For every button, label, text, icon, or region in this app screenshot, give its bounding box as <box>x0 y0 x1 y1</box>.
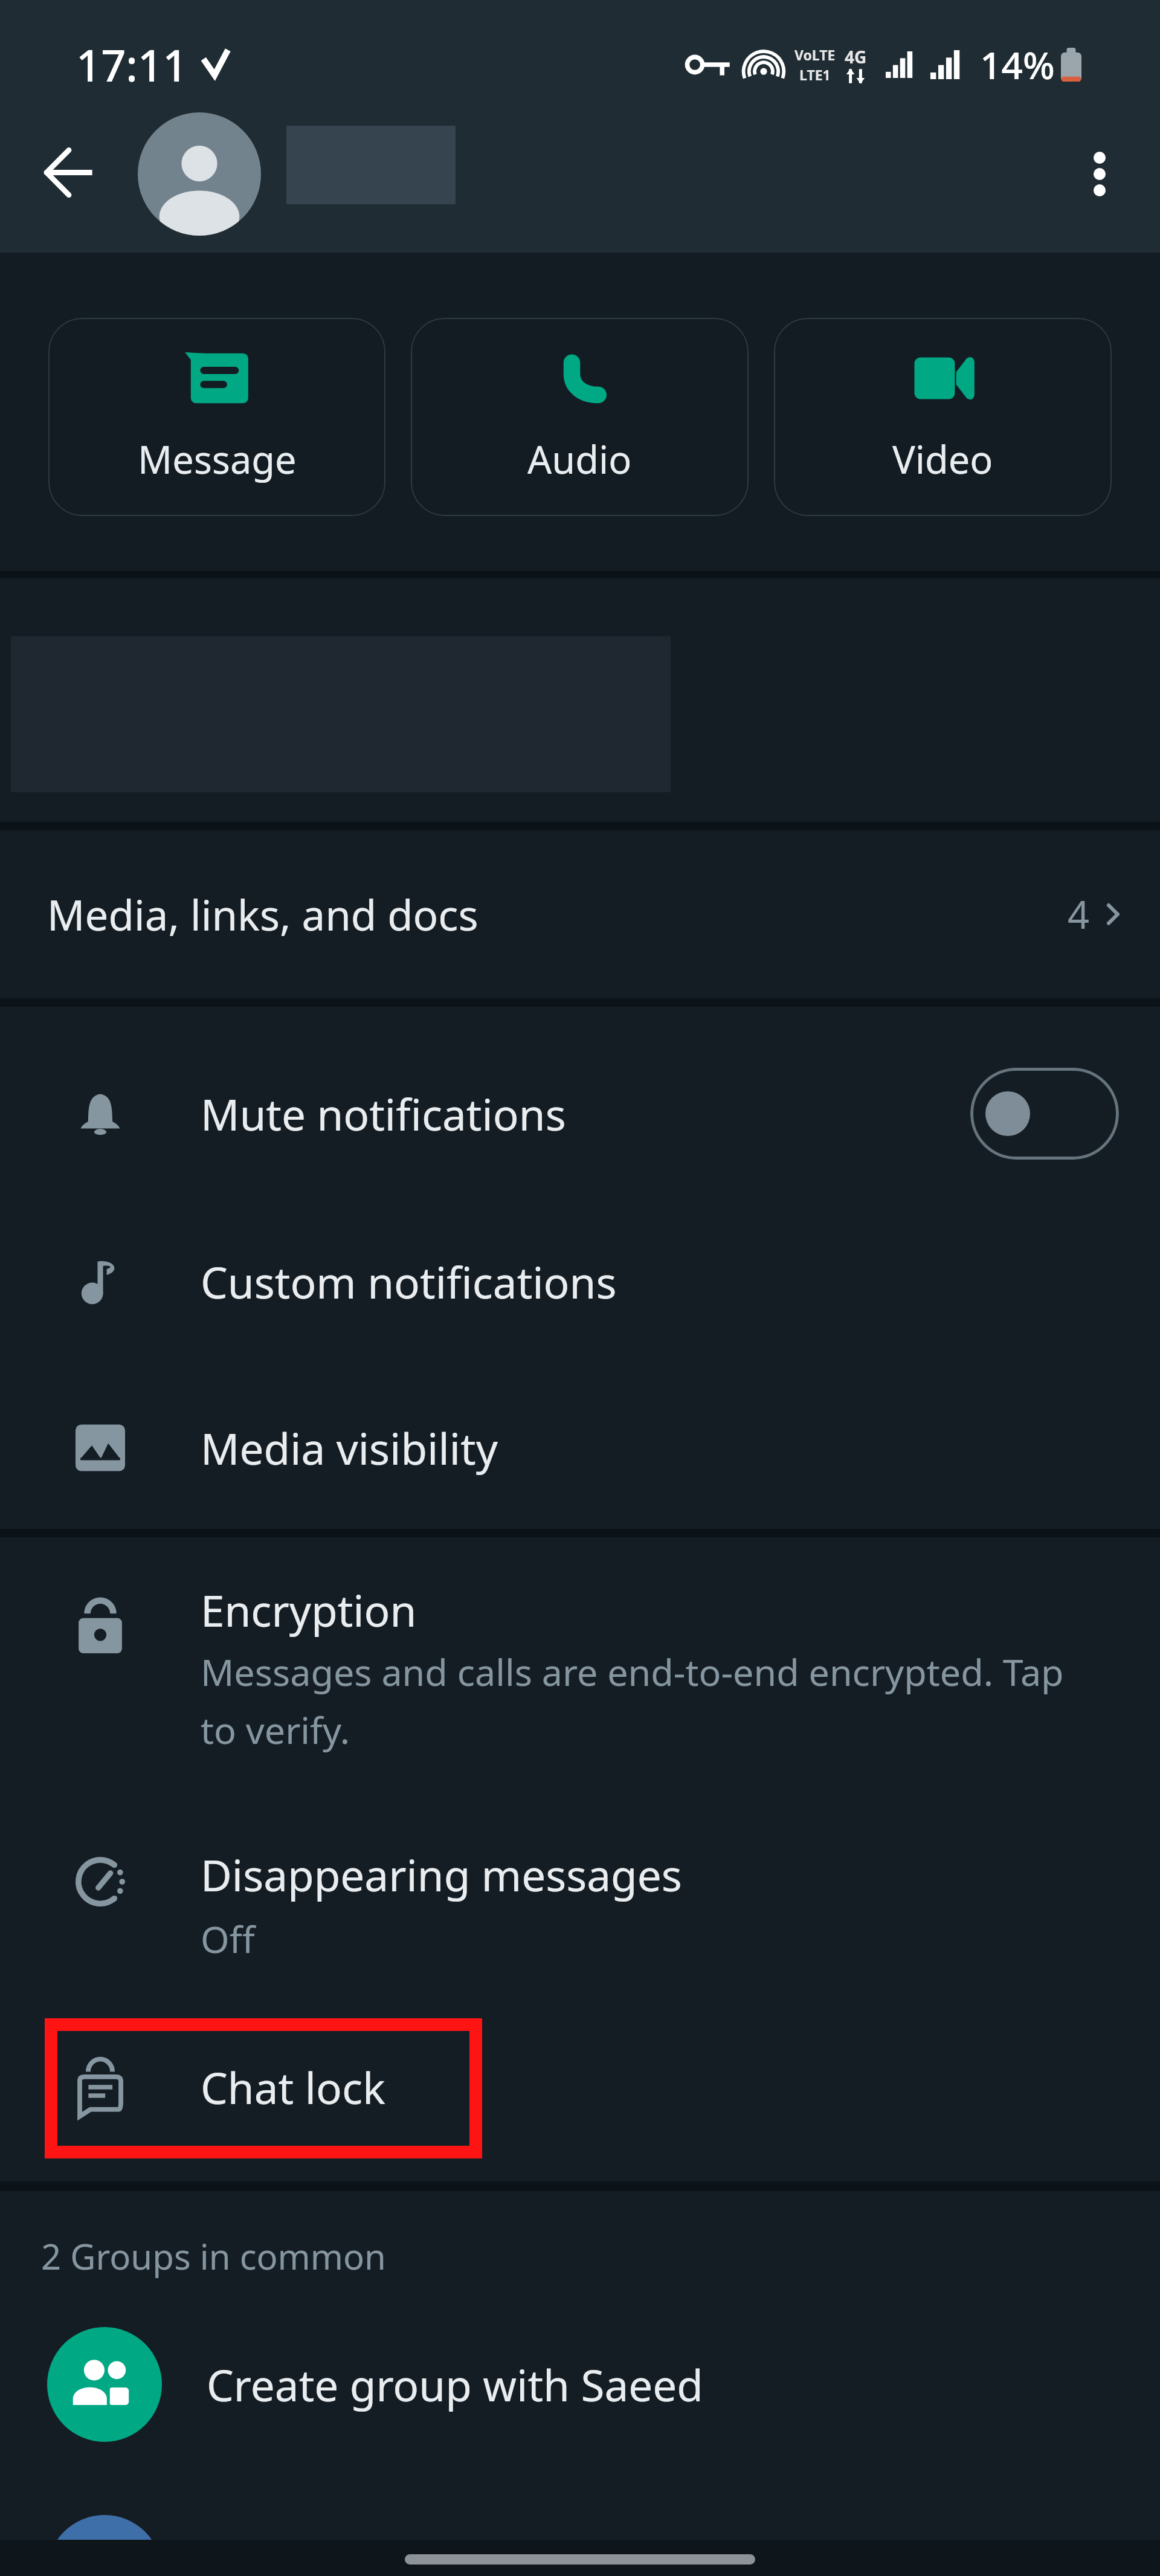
staticText: Encryption <box>201 1581 417 1639</box>
button[interactable]: Media visibility <box>0 1363 1160 1529</box>
staticText: LTE1 <box>799 65 831 84</box>
button[interactable]: Encryption <box>0 1581 1160 1755</box>
button[interactable]: Mute notifications toggle <box>970 1068 1119 1160</box>
staticText: Media, links, and docs <box>47 886 478 943</box>
staticText: Messages and calls are end-to-end encryp… <box>201 1647 1089 1755</box>
button[interactable]: Chat lock <box>0 2009 1160 2166</box>
button[interactable]: More options <box>1063 138 1136 210</box>
staticText: Off <box>201 1914 255 1964</box>
staticText: Audio <box>527 433 632 485</box>
button[interactable]: Media, links, and docs <box>0 830 1160 998</box>
staticText: Disappearing messages <box>201 1845 682 1904</box>
button[interactable]: Message <box>48 318 385 516</box>
button[interactable]: Audio <box>411 318 749 516</box>
staticText: Create group with Saeed <box>207 2355 703 2414</box>
button[interactable]: Mute notifications <box>0 1029 1160 1198</box>
staticText: Special Family <box>207 2543 489 2576</box>
staticText: Custom notifications <box>201 1253 617 1311</box>
button[interactable]: Back <box>33 136 105 208</box>
staticText: 17:11 <box>76 35 188 94</box>
staticText: Mute notifications <box>201 1085 566 1143</box>
staticText: 2 Groups in common <box>41 2232 386 2280</box>
button[interactable]: Disappearing messages <box>0 1845 1160 1964</box>
staticText: Chat lock <box>201 2058 385 2117</box>
staticText: 4G <box>845 45 867 68</box>
button[interactable]: Video <box>774 318 1112 516</box>
button[interactable]: Profile photo <box>138 112 261 236</box>
staticText: Media visibility <box>201 1419 498 1477</box>
staticText: Video <box>892 433 993 485</box>
staticText: VoLTE <box>794 45 836 64</box>
button[interactable]: Create group with Saeed <box>0 2327 1160 2442</box>
button[interactable]: Custom notifications <box>0 1197 1160 1366</box>
staticText: 14% <box>980 39 1055 90</box>
button[interactable]: Special Family <box>0 2515 1160 2576</box>
staticText: 4 <box>1068 888 1090 940</box>
staticText: Message <box>138 433 297 485</box>
